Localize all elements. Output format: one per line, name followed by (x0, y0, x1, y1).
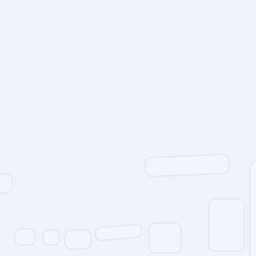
button[interactable]: Panel (250, 161, 256, 256)
button[interactable]: Left control (0, 174, 12, 193)
button[interactable]: Key 1 (15, 229, 35, 245)
button[interactable]: Field (145, 156, 229, 175)
button[interactable]: Key 3 (65, 230, 91, 249)
button[interactable]: Key 4 (149, 223, 181, 253)
button[interactable]: Space (95, 226, 142, 239)
button[interactable]: Key 2 (43, 230, 59, 245)
